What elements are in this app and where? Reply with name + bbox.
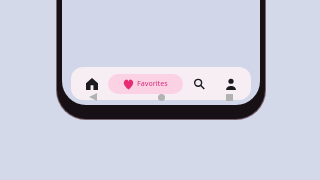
button[interactable]: Home (75, 67, 108, 100)
button[interactable]: Favorites (108, 74, 183, 94)
button[interactable]: Back (85, 89, 101, 105)
staticText: Favorites (137, 79, 168, 89)
button[interactable]: Recents (221, 89, 237, 105)
button[interactable]: Search (183, 67, 215, 100)
button[interactable]: Home (153, 89, 169, 105)
button[interactable]: Profile (215, 67, 247, 100)
